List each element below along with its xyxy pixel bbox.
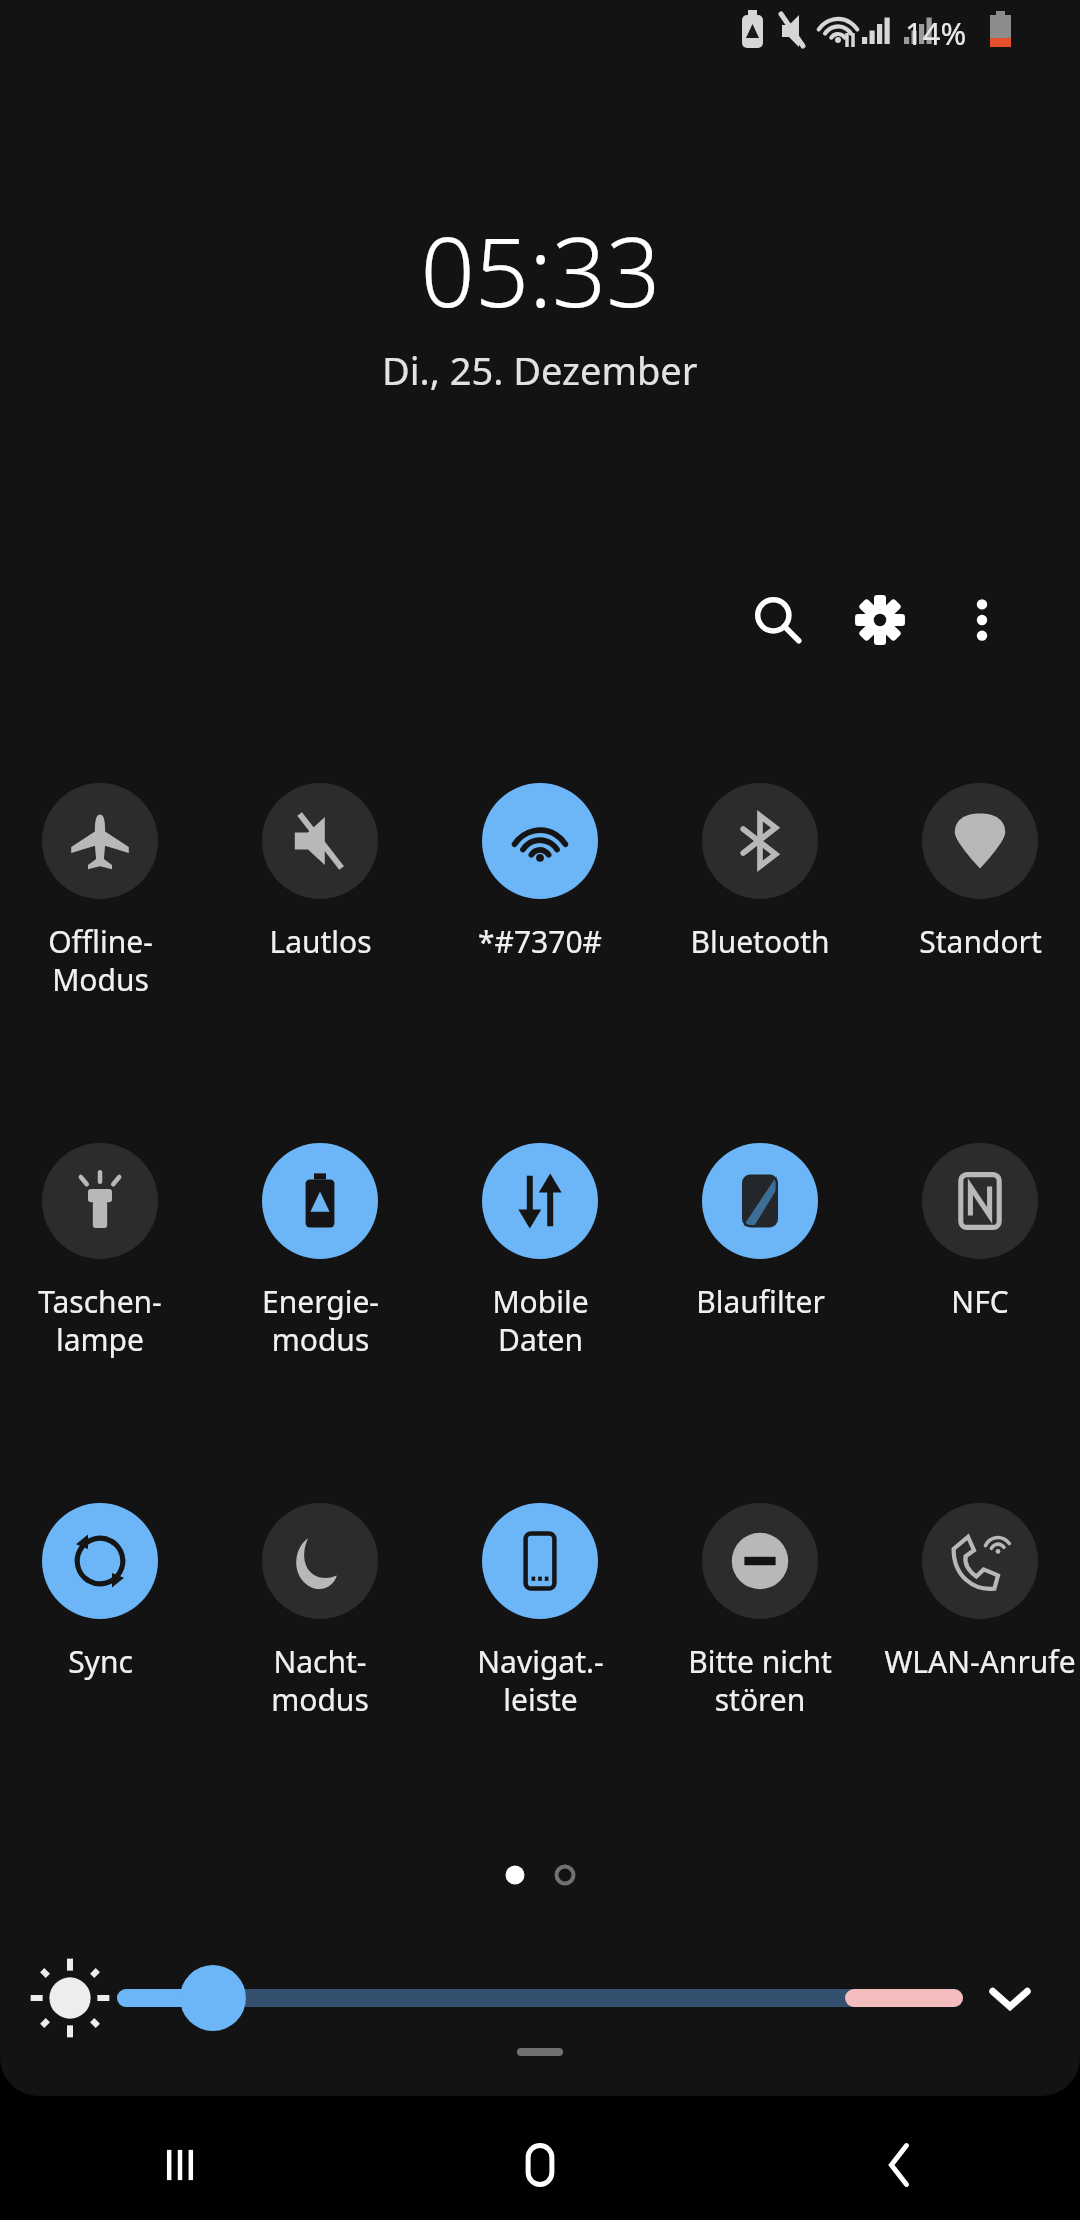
staticText: Mobile Daten [492,1281,589,1360]
button[interactable]: Lautlos [220,783,420,962]
button[interactable]: Expand [962,1950,1058,2046]
staticText: Blaufilter [696,1281,825,1322]
button[interactable] [118,1956,962,2040]
staticText: Lautlos [269,921,372,962]
staticText: Bitte nicht stören [688,1641,832,1720]
button[interactable]: Sync [0,1503,200,1682]
button[interactable]: Settings [837,577,923,663]
staticText: Offline- Modus [48,921,153,1000]
staticText: WLAN-Anrufe [884,1641,1076,1682]
staticText: NFC [951,1281,1009,1322]
staticText: 14% [905,12,967,54]
button[interactable]: Recents [105,2110,255,2220]
button[interactable]: Offline- Modus [0,783,200,1000]
button[interactable]: Bluetooth [660,783,860,962]
staticText: Nacht- modus [271,1641,369,1720]
staticText: Bluetooth [690,921,830,962]
staticText: Navigat.- leiste [477,1641,604,1720]
staticText: Sync [68,1641,133,1682]
button[interactable]: Bitte nicht stören [660,1503,860,1720]
button[interactable]: *#7370# [440,783,640,962]
button[interactable]: NFC [880,1143,1080,1322]
button[interactable]: Blaufilter [660,1143,860,1322]
staticText: Taschen- lampe [38,1281,162,1360]
button[interactable]: Nacht- modus [220,1503,420,1720]
button[interactable]: Taschen- lampe [0,1143,200,1360]
staticText: *#7370# [478,921,602,962]
button[interactable]: Home [465,2110,615,2220]
staticText: Standort [919,921,1042,962]
button[interactable]: Navigat.- leiste [440,1503,640,1720]
button[interactable]: Energie- modus [220,1143,420,1360]
button[interactable]: WLAN-Anrufe [880,1503,1080,1682]
button[interactable]: Mobile Daten [440,1143,640,1360]
staticText: Energie- modus [262,1281,379,1360]
button[interactable]: Back [825,2110,975,2220]
button[interactable]: Standort [880,783,1080,962]
button[interactable]: Search [735,577,821,663]
staticText: Di., 25. Dezember [382,344,698,396]
staticText: 05:33 [420,205,661,334]
button[interactable]: More options [939,577,1025,663]
